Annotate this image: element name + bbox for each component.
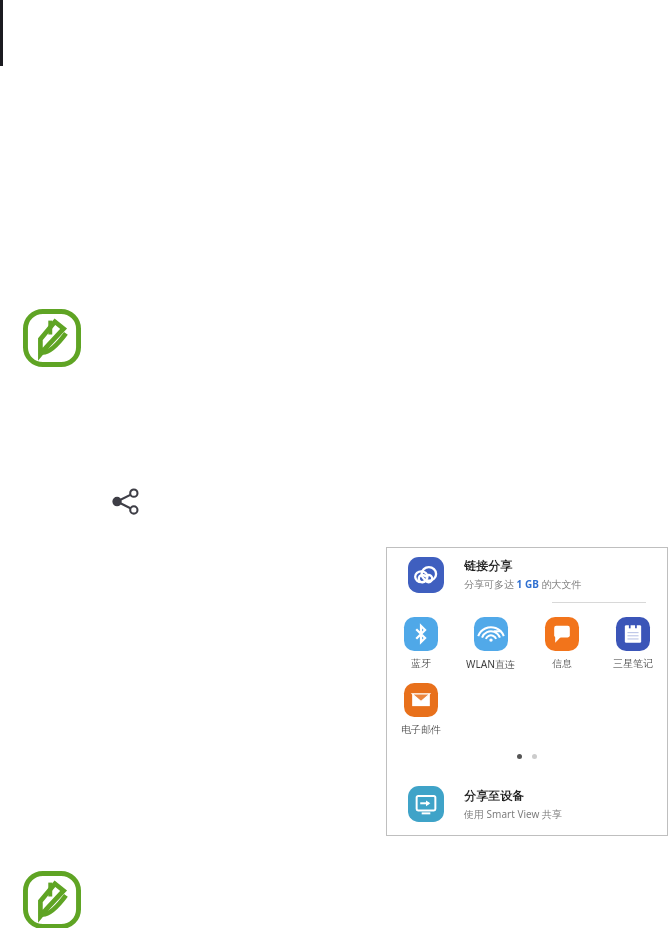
staticText: 使用 Smart View 共享 — [464, 807, 562, 821]
button[interactable]: 信息 — [526, 617, 597, 670]
staticText: 三星笔记 — [613, 657, 653, 670]
button[interactable]: 分享至设备 — [386, 778, 668, 830]
button[interactable]: WLAN直连 — [456, 617, 526, 671]
button[interactable]: Share — [108, 483, 144, 519]
staticText: 分享可多达 1 GB 的大文件 — [464, 577, 582, 591]
button[interactable]: 三星笔记 — [597, 617, 668, 670]
staticText: 信息 — [552, 657, 572, 670]
staticText: 蓝牙 — [411, 657, 431, 670]
button[interactable]: 链接分享 — [386, 547, 668, 602]
staticText: 电子邮件 — [401, 723, 441, 736]
button[interactable]: 电子邮件 — [386, 683, 456, 736]
staticText: 链接分享 — [464, 558, 512, 573]
button[interactable]: 蓝牙 — [386, 617, 456, 670]
staticText: 分享至设备 — [464, 788, 524, 803]
staticText: WLAN直连 — [466, 657, 516, 671]
